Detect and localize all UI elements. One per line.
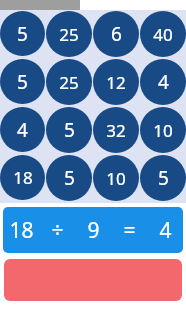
button[interactable]: 5 (140, 155, 186, 201)
button[interactable]: 25 (46, 11, 92, 57)
staticText: 10 (153, 119, 173, 142)
staticText: 6 (111, 21, 122, 47)
button[interactable]: 32 (93, 107, 139, 153)
staticText: 5 (64, 117, 75, 143)
staticText: 10 (106, 167, 126, 190)
staticText: ÷ (51, 216, 64, 245)
staticText: 5 (158, 165, 169, 191)
button[interactable]: 10 (93, 155, 139, 201)
button[interactable]: 18 (3, 207, 183, 253)
staticText: 25 (59, 23, 79, 46)
staticText: 4 (158, 69, 169, 95)
staticText: 5 (64, 165, 75, 191)
staticText: 18 (9, 216, 34, 245)
button[interactable]: 18 (0, 155, 45, 200)
staticText: 18 (13, 166, 33, 189)
staticText: 5 (17, 69, 28, 95)
staticText: = (123, 216, 136, 245)
staticText: 4 (159, 216, 172, 245)
button[interactable]: 4 (0, 107, 45, 152)
button[interactable]: 5 (46, 155, 92, 201)
button[interactable]: 40 (140, 11, 186, 57)
staticText: 32 (106, 119, 126, 142)
button[interactable]: 5 (0, 59, 45, 104)
button[interactable]: 12 (93, 59, 139, 105)
button[interactable]: 6 (93, 11, 139, 57)
staticText: 25 (59, 71, 79, 94)
staticText: 12 (106, 71, 126, 94)
staticText: 40 (153, 23, 173, 46)
button[interactable]: Clear (4, 259, 182, 301)
staticText: 9 (87, 216, 100, 245)
button[interactable]: 5 (46, 107, 92, 153)
button[interactable]: 10 (140, 107, 186, 153)
button[interactable]: 4 (140, 59, 186, 105)
staticText: 4 (17, 117, 28, 143)
button[interactable]: 25 (46, 59, 92, 105)
button[interactable]: 5 (0, 11, 45, 56)
staticText: 5 (17, 21, 28, 47)
